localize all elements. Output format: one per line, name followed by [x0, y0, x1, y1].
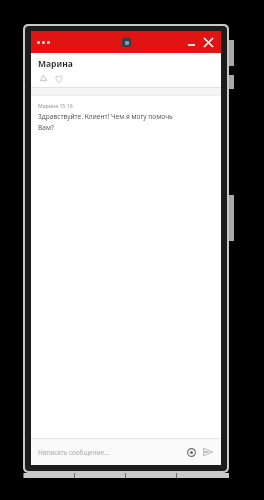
- button[interactable]: Close: [199, 33, 217, 51]
- button[interactable]: Notifications: [38, 73, 49, 84]
- staticText: Марина 15:16: [38, 102, 73, 109]
- button[interactable]: App icon: [122, 38, 131, 47]
- staticText: Марина: [38, 58, 73, 70]
- staticText: Вам?: [38, 123, 54, 132]
- button[interactable]: Minimize: [183, 33, 199, 51]
- button[interactable]: Attach: [184, 445, 198, 459]
- button[interactable]: Send: [201, 445, 215, 459]
- button[interactable]: Favorite: [53, 73, 64, 84]
- button[interactable]: Menu: [37, 33, 59, 51]
- button[interactable]: Марина: [31, 53, 221, 87]
- staticText: Здравствуйте. Клиент! Чем я могу помочь: [38, 112, 173, 121]
- button[interactable]: Написать сообщение...: [31, 439, 221, 465]
- staticText: Написать сообщение...: [38, 448, 184, 457]
